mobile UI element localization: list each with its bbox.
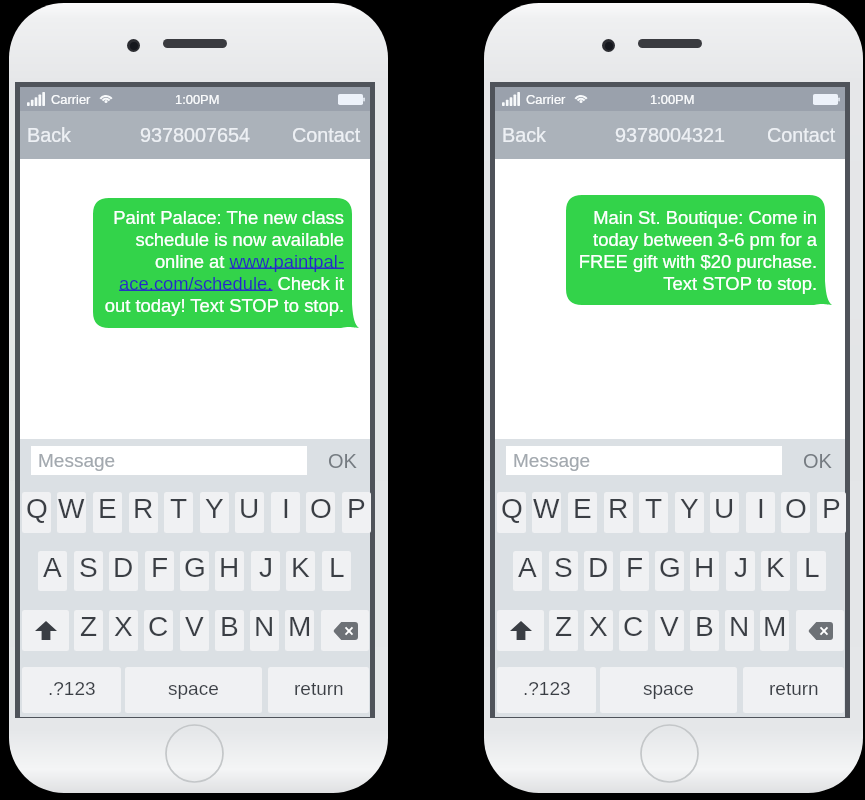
button[interactable]: Shift: [22, 610, 69, 651]
button[interactable]: O: [781, 492, 810, 533]
button[interactable]: Y: [200, 492, 229, 533]
button[interactable]: Q: [22, 492, 51, 533]
staticText: O: [785, 493, 807, 524]
button[interactable]: C: [619, 610, 648, 651]
button[interactable]: J: [251, 551, 280, 591]
button[interactable]: OK: [315, 446, 370, 475]
button[interactable]: .?123: [22, 667, 121, 713]
staticText: return: [769, 678, 819, 699]
staticText: E: [98, 493, 117, 524]
button[interactable]: N: [725, 610, 754, 651]
button[interactable]: S: [549, 551, 578, 591]
button[interactable]: M: [760, 610, 789, 651]
staticText: R: [608, 493, 629, 524]
staticText: Carrier: [51, 92, 91, 106]
button[interactable]: T: [164, 492, 193, 533]
button[interactable]: .?123: [497, 667, 596, 713]
staticText: V: [185, 611, 204, 642]
staticText: U: [239, 493, 260, 524]
button[interactable]: E: [568, 492, 597, 533]
button[interactable]: Message: [31, 446, 307, 475]
button[interactable]: L: [797, 551, 826, 591]
button[interactable]: V: [655, 610, 684, 651]
button[interactable]: return: [743, 667, 844, 713]
button[interactable]: X: [109, 610, 138, 651]
button[interactable]: C: [144, 610, 173, 651]
button[interactable]: G: [655, 551, 684, 591]
button[interactable]: Contact: [767, 111, 836, 159]
button[interactable]: H: [690, 551, 719, 591]
button[interactable]: E: [93, 492, 122, 533]
button[interactable]: D: [109, 551, 138, 591]
button[interactable]: U: [710, 492, 739, 533]
button[interactable]: T: [639, 492, 668, 533]
button[interactable]: S: [74, 551, 103, 591]
button[interactable]: Contact: [292, 111, 361, 159]
staticText: G: [659, 552, 681, 583]
button[interactable]: Main St. Boutique: Come in today between…: [566, 195, 832, 305]
button[interactable]: F: [145, 551, 174, 591]
button[interactable]: L: [322, 551, 351, 591]
staticText: Paint Palace: The new class schedule is …: [100, 207, 344, 316]
button[interactable]: Backspace: [796, 610, 844, 651]
staticText: F: [626, 552, 644, 583]
button[interactable]: I: [271, 492, 300, 533]
button[interactable]: J: [726, 551, 755, 591]
staticText: C: [623, 611, 644, 642]
button[interactable]: B: [690, 610, 719, 651]
button[interactable]: R: [604, 492, 633, 533]
button[interactable]: Z: [74, 610, 103, 651]
button[interactable]: Backspace: [321, 610, 369, 651]
staticText: .?123: [523, 678, 571, 699]
button[interactable]: OK: [790, 446, 845, 475]
button[interactable]: G: [180, 551, 209, 591]
staticText: OK: [328, 450, 357, 472]
button[interactable]: U: [235, 492, 264, 533]
button[interactable]: B: [215, 610, 244, 651]
button[interactable]: H: [215, 551, 244, 591]
button[interactable]: space: [600, 667, 737, 713]
button[interactable]: K: [286, 551, 315, 591]
button[interactable]: F: [620, 551, 649, 591]
button[interactable]: Q: [497, 492, 526, 533]
staticText: G: [184, 552, 206, 583]
button[interactable]: Back: [502, 111, 547, 159]
button[interactable]: A: [38, 551, 67, 591]
button[interactable]: A: [513, 551, 542, 591]
button[interactable]: Back: [27, 111, 72, 159]
staticText: S: [554, 552, 573, 583]
button[interactable]: Paint Palace: The new class schedule is …: [93, 198, 359, 328]
button[interactable]: I: [746, 492, 775, 533]
staticText: E: [573, 493, 592, 524]
staticText: Contact: [292, 124, 361, 146]
button[interactable]: O: [306, 492, 335, 533]
staticText: P: [822, 493, 841, 524]
staticText: X: [114, 611, 133, 642]
button[interactable]: X: [584, 610, 613, 651]
staticText: B: [220, 611, 239, 642]
button[interactable]: return: [268, 667, 369, 713]
button[interactable]: P: [817, 492, 846, 533]
button[interactable]: P: [342, 492, 371, 533]
button[interactable]: M: [285, 610, 314, 651]
button[interactable]: Message: [506, 446, 782, 475]
staticText: space: [643, 678, 694, 699]
other: Shift: [510, 621, 532, 640]
button[interactable]: V: [180, 610, 209, 651]
button[interactable]: R: [129, 492, 158, 533]
staticText: space: [168, 678, 219, 699]
button[interactable]: Shift: [497, 610, 544, 651]
staticText: OK: [803, 450, 832, 472]
button[interactable]: K: [761, 551, 790, 591]
staticText: O: [310, 493, 332, 524]
button[interactable]: W: [532, 492, 561, 533]
button[interactable]: Y: [675, 492, 704, 533]
button[interactable]: N: [250, 610, 279, 651]
button[interactable]: Z: [549, 610, 578, 651]
staticText: Back: [502, 124, 547, 146]
button[interactable]: W: [57, 492, 86, 533]
button[interactable]: D: [584, 551, 613, 591]
button[interactable]: space: [125, 667, 262, 713]
staticText: L: [329, 552, 345, 583]
staticText: Y: [205, 493, 224, 524]
